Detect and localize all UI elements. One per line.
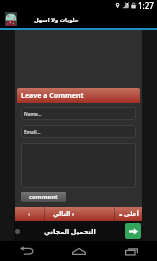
button[interactable]: Email...: [21, 125, 136, 138]
staticText: Leave a Comment: [21, 91, 84, 101]
staticText: التالي ›: [53, 210, 75, 218]
button[interactable]: comment: [21, 192, 66, 202]
button[interactable]: Previous: [15, 207, 44, 221]
button[interactable]: Download: [125, 223, 141, 239]
staticText: التحميل المجاني: [44, 227, 96, 236]
staticText: 1:27: [138, 0, 154, 10]
staticText: ‹: [28, 210, 31, 218]
button[interactable]: App icon: [5, 12, 17, 26]
button[interactable]: Comment text: [21, 143, 136, 188]
button[interactable]: Name...: [21, 107, 136, 120]
staticText: Name...: [24, 111, 42, 117]
staticText: حلويات ولا اسهل: [34, 16, 79, 23]
button[interactable]: Recent apps: [105, 241, 157, 261]
staticText: أعلى ه: [119, 210, 139, 218]
staticText: comment: [29, 193, 58, 201]
button[interactable]: أعلى ه: [115, 207, 142, 221]
staticText: i: [17, 229, 19, 234]
staticText: Email...: [24, 129, 41, 135]
button[interactable]: Back: [0, 241, 53, 261]
button[interactable]: Ad info: [15, 229, 20, 234]
button[interactable]: Home: [53, 241, 105, 261]
button[interactable]: التالي ›: [45, 207, 114, 221]
button[interactable]: Leave a Comment: [17, 88, 140, 103]
